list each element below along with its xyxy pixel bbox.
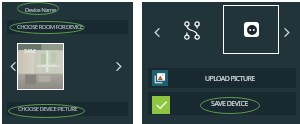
- button[interactable]: SAVE DEVICE: [148, 92, 296, 115]
- staticText: SAM: [24, 47, 36, 55]
- staticText: SAVE DEVICE: [211, 99, 248, 109]
- other: Previous picture: [10, 62, 16, 71]
- other: Next picture: [116, 62, 122, 71]
- staticText: CHOOSE DEVICE PICTURE: [18, 105, 78, 113]
- other: Previous device: [154, 28, 160, 37]
- staticText: UPLOAD PICTURE: [205, 74, 255, 84]
- button[interactable]: CHOOSE ROOM FOR DEVICE: [7, 20, 128, 34]
- other: Next device: [284, 28, 290, 37]
- staticText: CHOOSE ROOM FOR DEVICE: [17, 23, 83, 31]
- button[interactable]: UPLOAD PICTURE: [148, 68, 296, 88]
- button[interactable]: Network device: [184, 21, 200, 40]
- button[interactable]: Socket device selected: [223, 5, 279, 54]
- staticText: Device Name: [25, 6, 56, 14]
- button[interactable]: CHOOSE DEVICE PICTURE: [7, 102, 128, 116]
